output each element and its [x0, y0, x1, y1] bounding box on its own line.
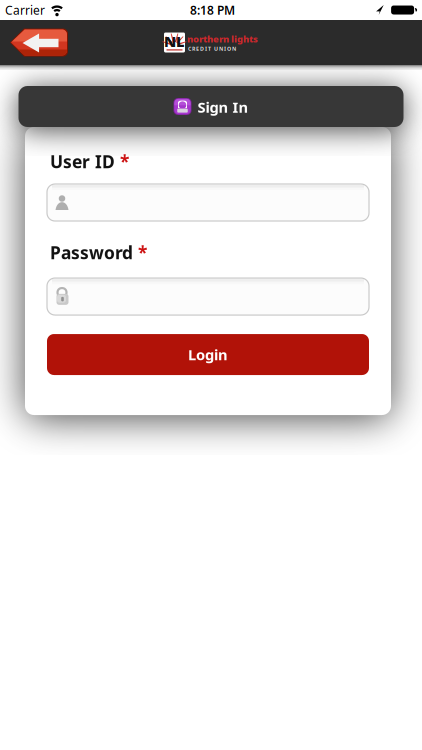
staticText: Sign In [197, 97, 248, 117]
staticText: Password [50, 241, 133, 264]
staticText: User ID [50, 150, 115, 173]
staticText: Carrier [5, 2, 45, 18]
staticText: * [115, 150, 129, 173]
staticText: northern lights [187, 33, 258, 45]
staticText: C R E D I T U N I O N [188, 45, 236, 52]
staticText: Login [188, 345, 228, 364]
staticText: 8:18 PM [190, 2, 235, 18]
button[interactable]: Back [10, 28, 68, 56]
button[interactable]: Login [47, 334, 369, 375]
button[interactable]: User ID [47, 184, 369, 221]
staticText: * [133, 241, 147, 264]
button[interactable]: Password [47, 278, 369, 315]
staticText: NL [164, 32, 185, 51]
